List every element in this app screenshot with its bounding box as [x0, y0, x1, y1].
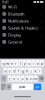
button[interactable]: Notifications	[0, 17, 45, 24]
button[interactable]: l	[38, 68, 42, 74]
button[interactable]: Bluetooth	[0, 10, 45, 17]
button[interactable]: w	[6, 60, 9, 66]
staticText: ☺	[7, 85, 10, 88]
staticText: k	[34, 68, 36, 73]
button[interactable]: r	[14, 60, 18, 66]
staticText: j	[31, 68, 32, 73]
staticText: a	[4, 68, 6, 73]
button[interactable]: e	[10, 60, 14, 66]
staticText: ⌫	[39, 77, 43, 80]
staticText: space	[19, 85, 26, 89]
button[interactable]: j	[29, 68, 33, 74]
button[interactable]: b	[25, 75, 29, 82]
staticText: n	[30, 76, 32, 81]
staticText: t	[20, 60, 21, 66]
staticText: go	[36, 85, 40, 89]
button[interactable]: go	[34, 84, 41, 90]
staticText: l	[39, 68, 40, 73]
staticText: f	[18, 68, 19, 73]
staticText: Wi-Fi	[8, 4, 17, 9]
staticText: i	[33, 60, 34, 66]
button[interactable]: i	[31, 60, 35, 66]
staticText: m	[33, 76, 37, 81]
staticText: z	[9, 76, 11, 81]
button[interactable]: h	[25, 68, 29, 74]
staticText: Sounds & Haptics	[8, 25, 38, 30]
staticText: ›	[42, 18, 43, 23]
button[interactable]: General	[0, 38, 45, 45]
button[interactable]: u	[27, 60, 31, 66]
staticText: 9:41	[2, 0, 9, 5]
staticText: s	[9, 68, 11, 73]
staticText: h	[26, 68, 28, 73]
button[interactable]: q	[1, 60, 5, 66]
staticText: ›	[42, 25, 43, 30]
button[interactable]: m	[33, 75, 37, 82]
button[interactable]: g	[21, 68, 24, 74]
staticText: ›	[42, 11, 43, 16]
staticText: e	[11, 60, 13, 66]
button[interactable]: d	[12, 68, 16, 74]
button[interactable]: v	[21, 75, 24, 82]
button[interactable]: space	[12, 84, 33, 90]
staticText: c	[17, 76, 19, 81]
staticText: g	[21, 68, 23, 73]
staticText: ⇧	[3, 77, 5, 80]
button[interactable]: ⌫	[39, 75, 44, 82]
staticText: ›	[42, 4, 43, 9]
button[interactable]: Wi-Fi	[0, 3, 45, 10]
button[interactable]: c	[16, 75, 20, 82]
staticText: w	[6, 60, 9, 66]
staticText: d	[13, 68, 15, 73]
staticText: Notifications	[8, 18, 29, 23]
button[interactable]: f	[16, 68, 20, 74]
staticText: p	[41, 60, 43, 66]
staticText: v	[21, 76, 23, 81]
button[interactable]: o	[36, 60, 39, 66]
button[interactable]: y	[23, 60, 27, 66]
staticText: Display	[8, 32, 21, 37]
button[interactable]: a	[3, 68, 7, 74]
button[interactable]: n	[29, 75, 33, 82]
staticText: Bluetooth	[8, 11, 24, 16]
staticText: ›	[42, 39, 43, 44]
button[interactable]: z	[8, 75, 11, 82]
staticText: r	[15, 60, 17, 66]
staticText: ›	[42, 32, 43, 37]
button[interactable]: ☺	[7, 84, 11, 90]
staticText: o	[36, 60, 38, 66]
button[interactable]: Display	[0, 31, 45, 38]
staticText: y	[24, 60, 26, 66]
button[interactable]: s	[8, 68, 11, 74]
staticText: x	[13, 76, 15, 81]
button[interactable]: p	[40, 60, 44, 66]
button[interactable]: k	[33, 68, 37, 74]
staticText: General	[8, 39, 22, 44]
button[interactable]: t	[18, 60, 22, 66]
button[interactable]: Sounds & Haptics	[0, 24, 45, 31]
staticText: 123	[2, 83, 6, 90]
button[interactable]: x	[12, 75, 16, 82]
staticText: q	[2, 60, 4, 66]
staticText: u	[28, 60, 30, 66]
button[interactable]: 123	[1, 84, 6, 90]
staticText: b	[26, 76, 28, 81]
button[interactable]: ⇧	[1, 75, 6, 82]
